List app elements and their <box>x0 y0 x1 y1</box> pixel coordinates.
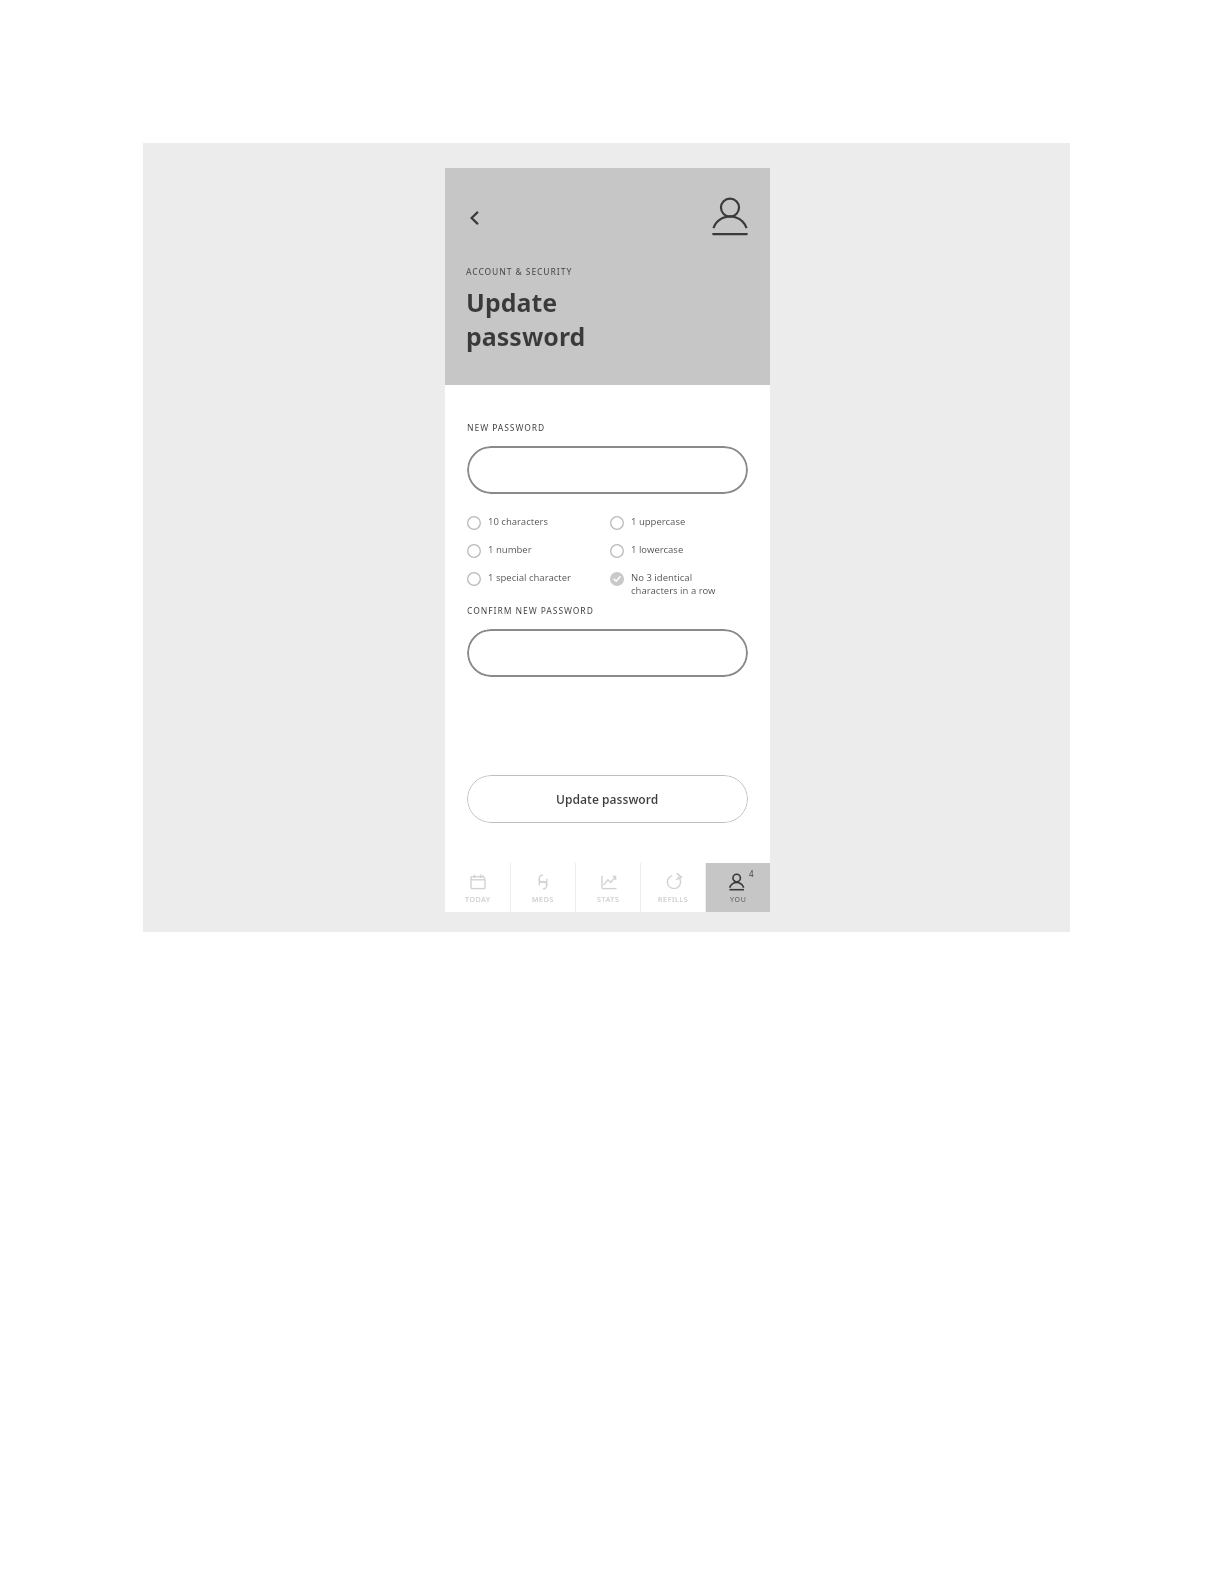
button[interactable]: Password input <box>467 629 748 677</box>
staticText: 10 characters <box>488 515 548 528</box>
staticText: 1 number <box>488 543 532 556</box>
button[interactable]: 10 characters <box>467 515 604 530</box>
staticText: MEDS <box>532 895 554 905</box>
button[interactable]: MEDS <box>511 863 575 912</box>
staticText: ACCOUNT & SECURITY <box>466 266 573 278</box>
staticText: No 3 identical characters in a row <box>631 571 716 597</box>
staticText: Update password <box>556 791 659 807</box>
staticText: 4 <box>749 868 754 879</box>
staticText: Update <box>466 285 558 319</box>
button[interactable]: 1 uppercase <box>610 515 748 530</box>
button[interactable]: No 3 identical characters in a row <box>610 571 748 597</box>
button[interactable]: REFILLS <box>641 863 705 912</box>
staticText: 1 lowercase <box>631 543 684 556</box>
button[interactable]: Profile <box>702 188 758 244</box>
staticText: NEW PASSWORD <box>467 422 546 434</box>
staticText: 1 uppercase <box>631 515 686 528</box>
button[interactable]: 1 number <box>467 543 604 558</box>
button[interactable]: 1 special character <box>467 571 604 586</box>
button[interactable]: TODAY <box>445 863 510 912</box>
button[interactable]: 4 <box>706 863 770 912</box>
staticText: REFILLS <box>658 895 689 905</box>
button[interactable]: STATS <box>576 863 640 912</box>
staticText: 1 special character <box>488 571 572 584</box>
staticText: STATS <box>597 895 620 905</box>
button[interactable]: Back <box>453 196 497 240</box>
staticText: password <box>466 319 586 353</box>
button[interactable]: 1 lowercase <box>610 543 748 558</box>
button[interactable]: Password input <box>467 446 748 494</box>
staticText: CONFIRM NEW PASSWORD <box>467 605 594 617</box>
staticText: TODAY <box>465 895 491 905</box>
button[interactable]: Update password <box>467 775 748 823</box>
staticText: YOU <box>730 895 747 905</box>
